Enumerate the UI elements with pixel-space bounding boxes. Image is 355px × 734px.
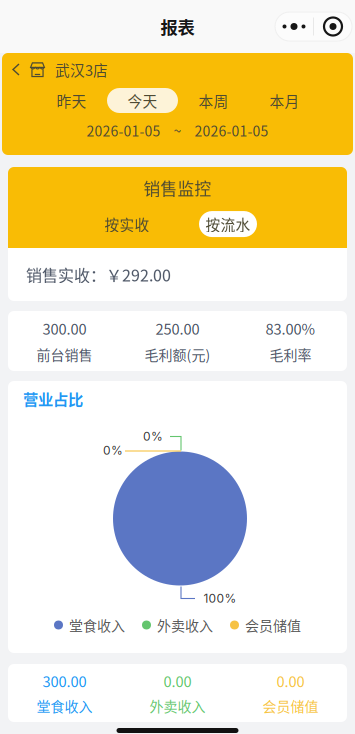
- button[interactable]: 昨天: [36, 84, 107, 116]
- button[interactable]: More: [275, 12, 313, 41]
- staticText: 昨天: [56, 90, 86, 111]
- staticText: 2026-01-05: [194, 120, 268, 141]
- staticText: 300.00: [42, 670, 86, 691]
- staticText: 堂食收入: [36, 695, 92, 716]
- staticText: 毛利额(元): [144, 344, 210, 364]
- staticText: 100%: [203, 591, 236, 606]
- staticText: 堂食收入: [69, 615, 125, 635]
- staticText: 销售实收：￥292.00: [26, 263, 171, 286]
- staticText: 0.00: [276, 670, 304, 691]
- button[interactable]: 本月: [249, 84, 320, 116]
- staticText: 营业占比: [23, 387, 83, 410]
- staticText: 武汉3店: [55, 59, 108, 80]
- button[interactable]: 按流水: [199, 211, 257, 237]
- staticText: 2026-01-05: [86, 120, 160, 141]
- staticText: 今天: [127, 90, 157, 111]
- staticText: 0.00: [163, 670, 191, 691]
- staticText: 250.00: [155, 318, 199, 339]
- staticText: 按流水: [205, 213, 250, 235]
- staticText: 0%: [143, 429, 163, 444]
- staticText: 会员储值: [245, 615, 301, 635]
- staticText: 报表: [160, 14, 194, 39]
- button[interactable]: Close: [314, 12, 352, 41]
- staticText: 外卖收入: [149, 695, 205, 716]
- button[interactable]: 2026-01-05: [2, 116, 353, 144]
- button[interactable]: 今天: [107, 84, 178, 116]
- staticText: 0%: [103, 443, 123, 458]
- staticText: 会员储值: [262, 695, 318, 716]
- staticText: 毛利率: [269, 344, 311, 364]
- staticText: 前台销售: [36, 344, 92, 364]
- staticText: 本周: [198, 90, 228, 111]
- staticText: 销售监控: [143, 176, 211, 200]
- staticText: 300.00: [42, 318, 86, 339]
- button[interactable]: 按实收: [98, 211, 156, 237]
- button[interactable]: 武汉3店: [2, 54, 353, 84]
- button[interactable]: 本周: [178, 84, 249, 116]
- staticText: 本月: [269, 90, 299, 111]
- staticText: 按实收: [104, 213, 149, 235]
- staticText: 83.00%: [265, 318, 315, 339]
- staticText: 外卖收入: [157, 615, 213, 635]
- staticText: ~: [173, 120, 181, 141]
